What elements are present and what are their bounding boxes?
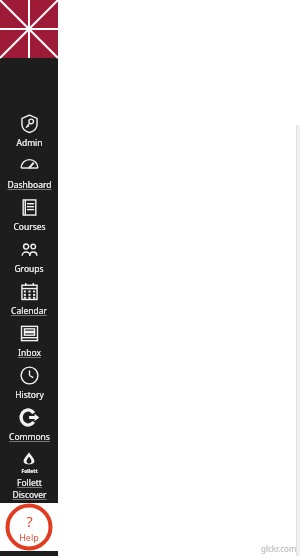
button[interactable]: Inbox: [0, 320, 58, 362]
staticText: Calendar: [11, 305, 47, 317]
staticText: Inbox: [18, 347, 41, 359]
button[interactable]: Calendar: [0, 278, 58, 320]
staticText: Courses: [13, 221, 46, 233]
button[interactable]: Dashboard: [0, 152, 58, 194]
button[interactable]: History: [0, 362, 58, 404]
staticText: Help: [19, 531, 39, 543]
button[interactable]: Groups: [0, 236, 58, 278]
button[interactable]: Admin: [0, 110, 58, 152]
staticText: Dashboard: [7, 179, 52, 191]
button[interactable]: Institution home: [0, 0, 58, 58]
staticText: Commons: [9, 431, 50, 443]
staticText: History: [15, 389, 44, 401]
staticText: ?: [26, 511, 33, 531]
staticText: Discover: [12, 489, 47, 501]
button[interactable]: Courses: [0, 194, 58, 236]
staticText: Follett: [21, 468, 38, 475]
staticText: Groups: [14, 263, 44, 275]
staticText: Follett: [17, 477, 42, 489]
button[interactable]: ?: [0, 503, 58, 551]
button[interactable]: Follett: [0, 446, 58, 503]
staticText: Admin: [16, 137, 43, 149]
button[interactable]: Commons: [0, 404, 58, 446]
staticText: glckr.com: [261, 543, 297, 554]
